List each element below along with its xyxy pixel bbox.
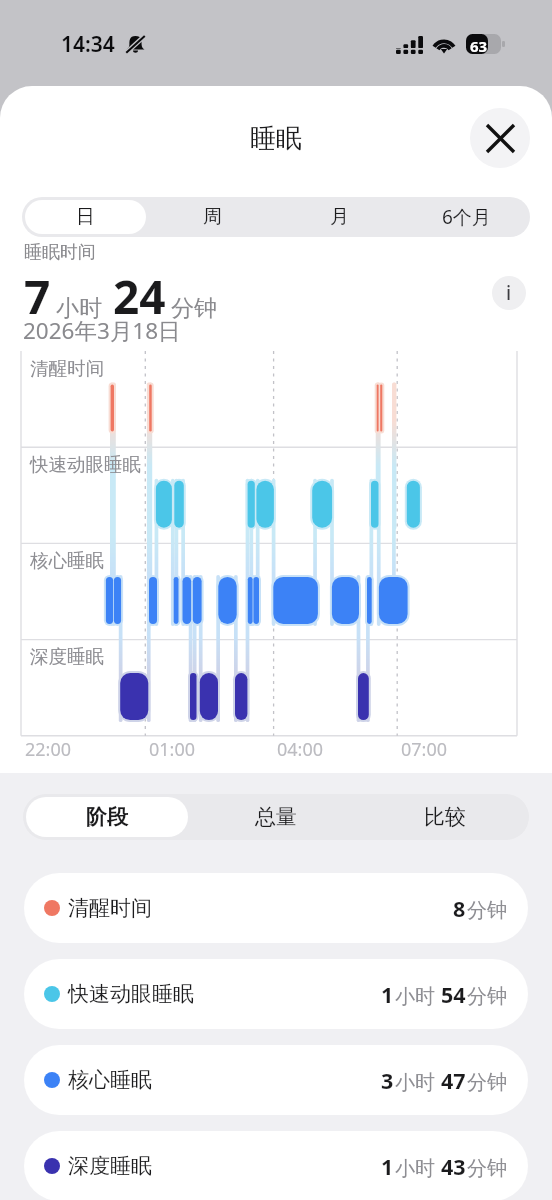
staticText: 小时	[395, 1156, 435, 1181]
staticText: 01:00	[149, 737, 196, 762]
staticText: 清醒时间	[30, 357, 104, 380]
staticText: 睡眠	[250, 122, 302, 155]
staticText: 43	[441, 1152, 466, 1181]
button[interactable]: 信息	[492, 276, 526, 310]
staticText: 分钟	[467, 984, 507, 1009]
button[interactable]: 日	[25, 200, 146, 234]
staticText: 核心睡眠	[30, 549, 104, 572]
button[interactable]: 月	[279, 200, 400, 234]
button[interactable]: 清醒时间	[24, 873, 528, 943]
button[interactable]: 深度睡眠	[24, 1131, 528, 1200]
staticText: 1	[381, 1152, 394, 1181]
staticText: 2026年3月18日	[23, 315, 181, 346]
staticText: 6个月	[442, 204, 491, 230]
staticText: 3	[381, 1066, 394, 1095]
staticText: 睡眠时间	[24, 241, 96, 264]
button[interactable]: 关闭	[470, 108, 530, 168]
staticText: 周	[203, 205, 222, 229]
staticText: 总量	[255, 804, 297, 830]
staticText: 月	[330, 205, 349, 229]
staticText: 1	[381, 980, 394, 1009]
staticText: 深度睡眠	[30, 645, 104, 668]
staticText: 54	[441, 980, 466, 1009]
staticText: 阶段	[86, 804, 128, 830]
staticText: 07:00	[401, 737, 448, 762]
button[interactable]: 核心睡眠	[24, 1045, 528, 1115]
staticText: 小时	[395, 1070, 435, 1095]
staticText: 日	[76, 205, 95, 229]
staticText: 清醒时间	[68, 895, 152, 921]
button[interactable]: 6个月	[406, 200, 527, 234]
button[interactable]: 比较	[363, 797, 526, 837]
staticText: 核心睡眠	[68, 1067, 152, 1093]
staticText: i	[506, 280, 512, 306]
staticText: 04:00	[277, 737, 324, 762]
staticText: 14:34	[61, 30, 115, 59]
button[interactable]: 总量	[194, 797, 357, 837]
staticText: 比较	[424, 804, 466, 830]
button[interactable]: 快速动眼睡眠	[24, 959, 528, 1029]
staticText: 分钟	[467, 1156, 507, 1181]
staticText: 分钟	[467, 898, 507, 923]
staticText: 7	[24, 265, 51, 328]
staticText: 小时	[395, 984, 435, 1009]
staticText: 快速动眼睡眠	[68, 981, 194, 1007]
staticText: 小时	[56, 294, 102, 323]
staticText: 深度睡眠	[68, 1153, 152, 1179]
staticText: 22:00	[25, 737, 72, 762]
staticText: 快速动眼睡眠	[30, 453, 141, 476]
staticText: 分钟	[467, 1070, 507, 1095]
staticText: 63	[470, 36, 488, 56]
staticText: 8	[453, 894, 466, 923]
button[interactable]: 阶段	[26, 797, 188, 837]
button[interactable]: 周	[152, 200, 273, 234]
staticText: 分钟	[171, 294, 217, 323]
staticText: 47	[441, 1066, 466, 1095]
staticText: 24	[113, 265, 166, 328]
